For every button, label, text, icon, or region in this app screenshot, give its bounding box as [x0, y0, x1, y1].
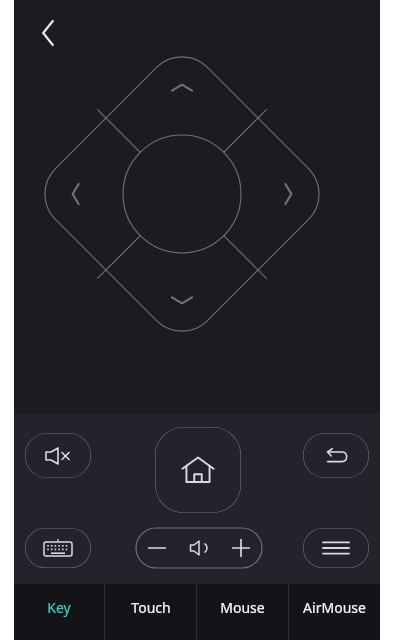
staticText: AirMouse [303, 598, 366, 617]
button[interactable]: Volume down [136, 528, 178, 568]
button[interactable]: Touch [105, 584, 196, 640]
button[interactable]: Back [28, 13, 68, 53]
button[interactable]: Home [155, 427, 241, 513]
button[interactable]: Key [14, 584, 104, 640]
button[interactable]: Mute [25, 433, 91, 478]
staticText: Key [47, 598, 71, 617]
button[interactable]: Menu [303, 528, 369, 568]
staticText: Mouse [220, 598, 265, 617]
button[interactable]: AirMouse [289, 584, 380, 640]
button[interactable]: Keyboard [25, 528, 91, 568]
button[interactable]: Volume up [220, 528, 262, 568]
button[interactable]: Return [303, 433, 369, 478]
button[interactable]: Mouse [197, 584, 288, 640]
staticText: Touch [131, 598, 171, 617]
